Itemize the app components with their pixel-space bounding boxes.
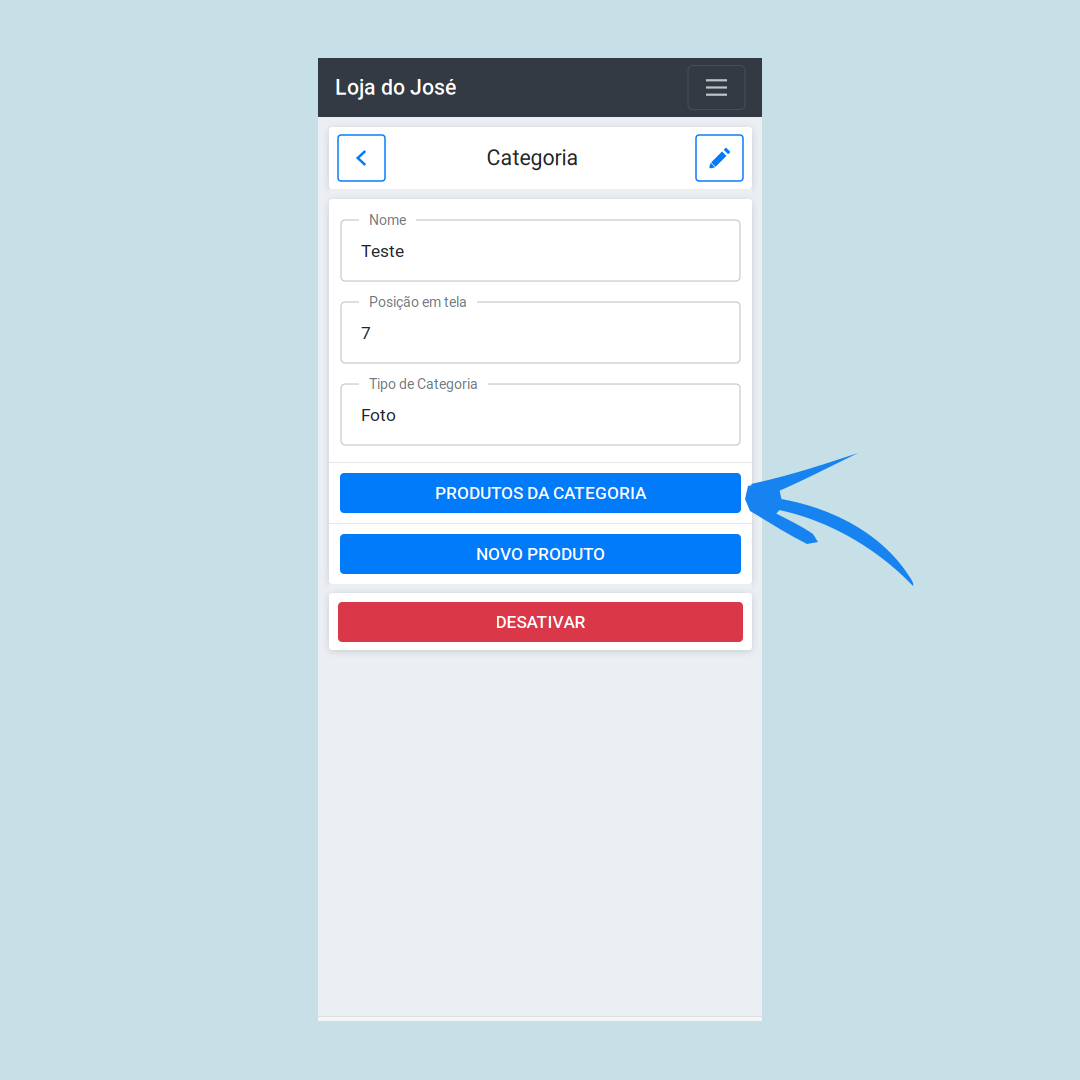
staticText: 7	[361, 323, 371, 343]
button[interactable]: DESATIVAR	[338, 602, 743, 642]
staticText: Posição em tela	[369, 294, 467, 310]
staticText: Tipo de Categoria	[369, 376, 478, 392]
button[interactable]: Edit	[696, 135, 743, 181]
staticText: Categoria	[486, 145, 578, 170]
staticText: Nome	[369, 212, 406, 228]
button[interactable]: PRODUTOS DA CATEGORIA	[340, 473, 741, 513]
button[interactable]: Back	[338, 135, 385, 181]
staticText: NOVO PRODUTO	[476, 544, 605, 564]
button[interactable]: NOVO PRODUTO	[340, 534, 741, 574]
staticText: DESATIVAR	[495, 612, 585, 632]
staticText: PRODUTOS DA CATEGORIA	[435, 483, 646, 503]
staticText: Teste	[361, 241, 404, 261]
button[interactable]: Menu	[688, 65, 745, 109]
staticText: Foto	[361, 405, 396, 425]
staticText: Loja do José	[335, 75, 456, 100]
